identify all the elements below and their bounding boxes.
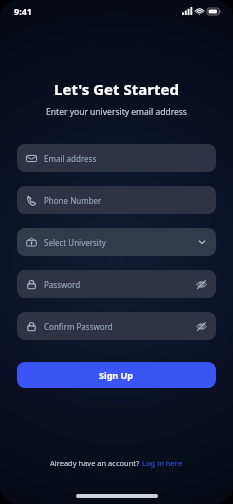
other: Open university list [197, 237, 207, 247]
other: Show password [196, 321, 207, 332]
staticText: Phone Number [44, 195, 207, 206]
staticText: Let's Get Started [0, 79, 233, 99]
button[interactable]: Already have an account? [0, 454, 233, 472]
staticText: Enter your university email address [0, 106, 233, 118]
button[interactable]: Phone Number [17, 186, 216, 214]
staticText: Sign Up [99, 369, 134, 381]
button[interactable]: Confirm Password [17, 312, 216, 340]
staticText: Select University [44, 237, 197, 248]
other: Show password [196, 279, 207, 290]
staticText: Log in here [142, 458, 183, 468]
staticText: Email address [44, 153, 207, 164]
staticText: Confirm Password [44, 321, 196, 332]
button[interactable]: Select University [17, 228, 216, 256]
staticText: Password [44, 279, 196, 290]
button[interactable]: Password [17, 270, 216, 298]
button[interactable]: Email address [17, 144, 216, 172]
button[interactable]: Sign Up [17, 362, 216, 388]
staticText: Already have an account? [50, 458, 142, 468]
staticText: 9:41 [14, 5, 32, 17]
